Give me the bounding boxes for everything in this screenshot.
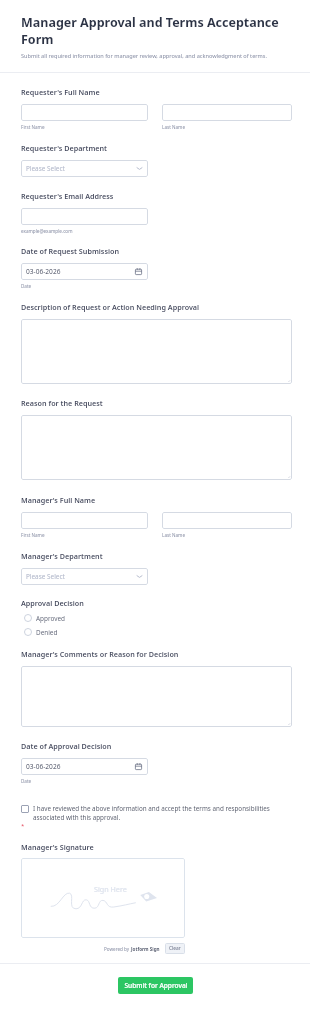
staticText: Manager's Comments or Reason for Decisio…: [21, 649, 179, 659]
button[interactable]: Clear: [165, 943, 185, 954]
button[interactable]: Please Select: [21, 160, 148, 177]
button[interactable]: [21, 319, 292, 384]
other: Pick date: [135, 268, 142, 275]
button[interactable]: [21, 208, 148, 225]
button[interactable]: Denied: [21, 626, 58, 638]
staticText: Manager's Department: [21, 551, 103, 561]
staticText: Manager's Full Name: [21, 495, 96, 505]
button[interactable]: Signature pad, sign here: [21, 858, 185, 938]
staticText: I have reviewed the above information an…: [33, 804, 292, 822]
staticText: Manager's Signature: [21, 842, 94, 852]
staticText: 03-06-2026: [26, 267, 61, 276]
button[interactable]: [162, 104, 292, 121]
staticText: Approval Decision: [21, 598, 84, 608]
staticText: Last Name: [162, 124, 185, 130]
button[interactable]: [21, 666, 292, 727]
staticText: Last Name: [162, 532, 185, 538]
staticText: Please Select: [26, 572, 65, 581]
other: Pick date: [135, 763, 142, 770]
staticText: Date of Request Submission: [21, 246, 119, 256]
staticText: Reason for the Request: [21, 398, 103, 408]
button[interactable]: [21, 104, 148, 121]
button[interactable]: 03-06-2026: [21, 758, 148, 775]
button[interactable]: 03-06-2026: [21, 263, 148, 280]
button[interactable]: [162, 512, 292, 529]
staticText: 03-06-2026: [26, 762, 61, 771]
button[interactable]: I have reviewed the above information an…: [21, 804, 292, 822]
staticText: Submit all required information for mana…: [21, 52, 268, 60]
staticText: Sign Here: [94, 884, 127, 894]
button[interactable]: [21, 415, 292, 480]
staticText: First Name: [21, 532, 45, 538]
staticText: Approved: [36, 614, 65, 623]
staticText: Requester's Email Address: [21, 191, 114, 201]
staticText: Date: [21, 778, 32, 784]
staticText: Powered by: [104, 946, 131, 952]
staticText: Description of Request or Action Needing…: [21, 302, 200, 312]
button[interactable]: Submit for Approval: [118, 977, 193, 994]
staticText: Requester's Full Name: [21, 87, 100, 97]
staticText: Please Select: [26, 164, 65, 173]
staticText: Date: [21, 283, 32, 289]
staticText: Submit for Approval: [124, 981, 188, 990]
staticText: Denied: [36, 628, 58, 637]
staticText: Requester's Department: [21, 143, 107, 153]
staticText: Manager Approval and Terms Acceptance Fo…: [21, 14, 294, 47]
staticText: example@example.com: [21, 228, 73, 234]
staticText: Date of Approval Decision: [21, 741, 112, 751]
staticText: Jotform Sign: [131, 946, 160, 952]
staticText: First Name: [21, 124, 45, 130]
staticText: *: [21, 822, 25, 830]
staticText: Clear: [169, 945, 181, 952]
button[interactable]: [21, 512, 148, 529]
button[interactable]: Approved: [21, 612, 65, 624]
button[interactable]: Please Select: [21, 568, 148, 585]
